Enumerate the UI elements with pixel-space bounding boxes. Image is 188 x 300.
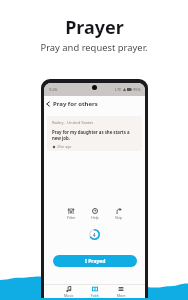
staticText: I Prayed <box>85 258 106 265</box>
button[interactable]: More <box>108 286 134 298</box>
staticText: Prayer <box>65 15 124 40</box>
staticText: Pray for my daughter as she starts a new… <box>52 129 137 141</box>
staticText: Filter <box>67 215 76 220</box>
staticText: 9:26 <box>49 87 58 93</box>
button[interactable]: Faith <box>82 286 108 298</box>
button[interactable]: I Prayed <box>53 255 137 267</box>
staticText: Pray for others <box>53 100 98 108</box>
button[interactable]: Filter <box>59 207 83 221</box>
staticText: 25m ago <box>57 144 72 149</box>
staticText: 4 <box>93 232 96 238</box>
staticText: Pray and request prayer. <box>40 41 148 54</box>
button[interactable]: Skip <box>107 207 131 221</box>
button[interactable]: Railey - United States <box>47 116 142 151</box>
staticText: Railey - United States <box>52 120 94 126</box>
staticText: Faith <box>91 293 99 298</box>
button[interactable]: Help <box>83 207 107 221</box>
staticText: 95% <box>133 87 141 92</box>
button[interactable]: Pray for others <box>44 96 145 110</box>
button[interactable]: Music <box>56 286 82 298</box>
staticText: Help <box>91 215 99 220</box>
staticText: Music <box>64 293 74 298</box>
staticText: More <box>117 293 126 298</box>
staticText: Skip <box>115 215 123 220</box>
staticText: LTE <box>115 87 122 92</box>
